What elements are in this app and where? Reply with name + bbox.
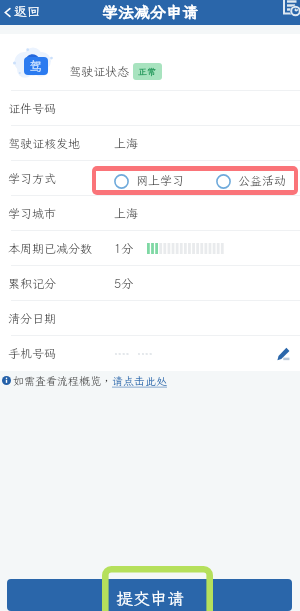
staticText: 上海 <box>114 136 139 152</box>
staticText: 5分 <box>114 276 134 292</box>
button[interactable]: 如需查看流程概览， <box>2 371 300 390</box>
staticText: 清分日期 <box>8 311 57 327</box>
button[interactable]: 驾驶证核发地 <box>0 126 300 161</box>
button[interactable]: 公益活动 <box>216 173 287 189</box>
staticText: 手机号码 <box>8 346 57 362</box>
staticText: 学习方式 <box>8 171 57 187</box>
staticText: 1分 <box>114 241 134 257</box>
button[interactable]: 编辑手机号码 <box>274 345 292 363</box>
button[interactable]: 清分日期 <box>0 301 300 336</box>
staticText: 学习城市 <box>8 206 57 222</box>
button[interactable]: 网上学习 <box>114 173 185 189</box>
staticText: 证件号码 <box>8 101 57 117</box>
staticText: 本周期已减分数 <box>8 241 93 257</box>
staticText: 上海 <box>114 206 139 222</box>
button[interactable]: 申请记录 <box>281 0 300 18</box>
staticText: 返回 <box>14 3 41 20</box>
staticText: 提交申请 <box>116 587 184 609</box>
staticText: ···· ···· <box>114 347 153 361</box>
staticText: 请点击此处 <box>112 374 167 388</box>
staticText: 正常 <box>138 66 157 78</box>
staticText: 驾 <box>29 58 43 75</box>
staticText: 网上学习 <box>136 173 185 189</box>
staticText: 公益活动 <box>238 173 287 189</box>
button[interactable]: 证件号码 <box>0 91 300 126</box>
button[interactable]: 本周期已减分数 <box>0 231 300 266</box>
button[interactable]: 返回 <box>2 4 41 21</box>
staticText: 累积记分 <box>8 276 57 292</box>
staticText: 如需查看流程概览， <box>13 374 112 388</box>
button[interactable]: 累积记分 <box>0 266 300 301</box>
staticText: 驾驶证核发地 <box>8 136 81 152</box>
staticText: 学法减分申请 <box>102 1 199 22</box>
button[interactable]: 提交申请 <box>7 579 292 611</box>
button[interactable]: 学习城市 <box>0 196 300 231</box>
staticText: 驾驶证状态 <box>69 64 130 80</box>
